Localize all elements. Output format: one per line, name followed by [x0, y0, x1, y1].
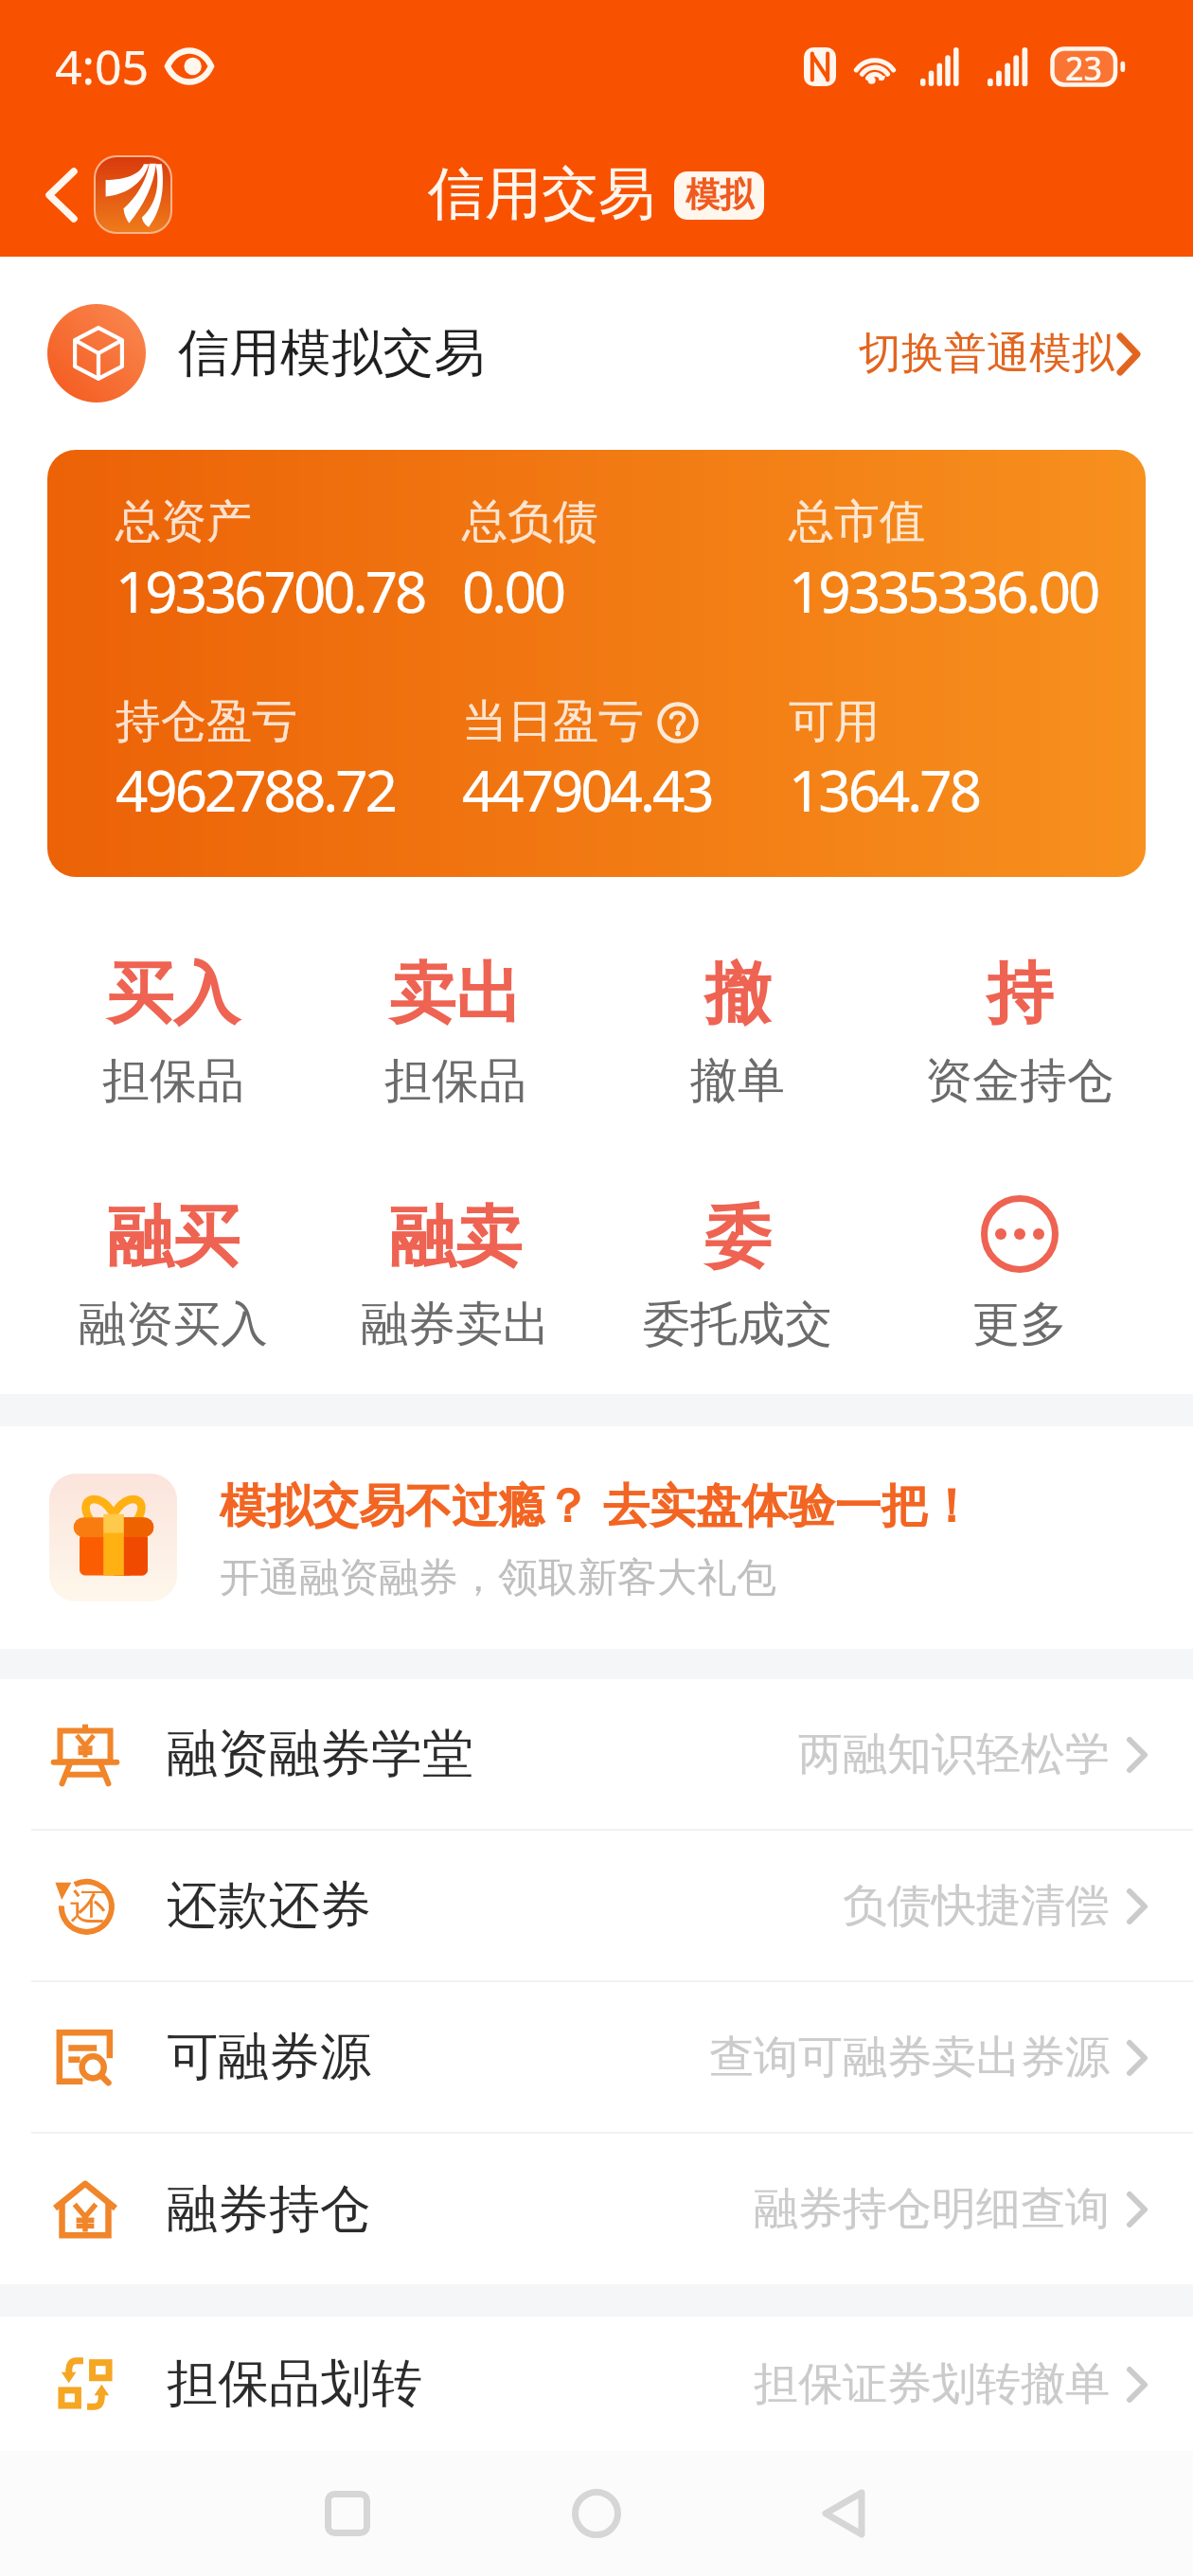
button[interactable]: 融资融券学堂: [0, 1679, 1193, 1829]
staticText: 融券持仓: [167, 2177, 371, 2242]
button[interactable]: Back: [801, 2471, 886, 2556]
staticText: 总市值: [789, 493, 925, 550]
staticText: 总资产: [116, 493, 252, 550]
button[interactable]: 买入: [32, 909, 314, 1099]
staticText: 4:05: [55, 34, 150, 98]
staticText: 担保品划转: [167, 2352, 422, 2416]
staticText: 撤: [704, 953, 771, 1036]
staticText: 融券持仓明细查询: [754, 2181, 1110, 2237]
staticText: 资金持仓: [925, 1051, 1114, 1111]
button[interactable]: 委: [596, 1153, 879, 1342]
button[interactable]: 融卖: [314, 1153, 596, 1342]
button[interactable]: Recent apps: [305, 2471, 390, 2556]
staticText: 委托成交: [643, 1295, 832, 1354]
staticText: 信用交易: [428, 158, 655, 230]
staticText: 融卖: [389, 1196, 522, 1279]
staticText: 19336700.78: [116, 552, 425, 630]
staticText: 还款还券: [167, 1873, 371, 1938]
staticText: 委: [704, 1196, 771, 1279]
staticText: 还: [70, 1884, 106, 1929]
staticText: 持: [987, 953, 1053, 1036]
staticText: 0.00: [462, 552, 564, 630]
staticText: 融买: [107, 1196, 240, 1279]
staticText: 1364.78: [789, 751, 979, 829]
button[interactable]: 融买: [32, 1153, 314, 1342]
staticText: 担保品: [384, 1051, 526, 1111]
button[interactable]: 融券持仓: [0, 2134, 1193, 2284]
staticText: 切换普通模拟: [859, 327, 1114, 381]
button[interactable]: 切换普通模拟: [859, 327, 1141, 381]
staticText: 可用: [789, 693, 880, 750]
staticText: 23: [1065, 46, 1102, 85]
staticText: 可融券源: [167, 2025, 371, 2089]
staticText: 负债快捷清偿: [843, 1878, 1110, 1934]
staticText: 447904.43: [462, 751, 712, 829]
staticText: 开通融资融券，领取新客大礼包: [220, 1553, 776, 1603]
button[interactable]: 还: [0, 1831, 1193, 1980]
staticText: 当日盈亏: [462, 693, 644, 750]
staticText: 信用模拟交易: [178, 321, 485, 385]
staticText: 两融知识轻松学: [798, 1726, 1110, 1782]
staticText: 融资买入: [79, 1295, 268, 1354]
staticText: 查询可融券卖出券源: [709, 2030, 1110, 2085]
button[interactable]: App logo: [96, 157, 170, 232]
button[interactable]: 持: [879, 909, 1161, 1099]
button[interactable]: Home: [554, 2471, 639, 2556]
staticText: 买入: [107, 953, 240, 1036]
staticText: 19335336.00: [789, 552, 1098, 630]
staticText: 更多: [972, 1295, 1067, 1354]
staticText: 融资融券学堂: [167, 1722, 473, 1786]
staticText: 模拟: [686, 173, 754, 216]
button[interactable]: Back: [25, 159, 97, 231]
button[interactable]: 更多: [879, 1153, 1161, 1342]
staticText: 4962788.72: [116, 751, 395, 829]
staticText: 总负债: [462, 493, 598, 550]
staticText: 撤单: [690, 1051, 785, 1111]
button[interactable]: 模拟交易不过瘾？ 去实盘体验一把！: [0, 1426, 1193, 1649]
button[interactable]: 担保品划转: [0, 2317, 1193, 2451]
button[interactable]: 撤: [596, 909, 879, 1099]
button[interactable]: 卖出: [314, 909, 596, 1099]
staticText: 持仓盈亏: [116, 693, 297, 750]
staticText: 卖出: [389, 953, 522, 1036]
button[interactable]: 可融券源: [0, 1982, 1193, 2132]
staticText: 模拟交易不过瘾？ 去实盘体验一把！: [220, 1473, 974, 1536]
staticText: 担保品: [102, 1051, 244, 1111]
staticText: 融券卖出: [361, 1295, 550, 1354]
staticText: 担保证券划转撤单: [754, 2356, 1110, 2412]
